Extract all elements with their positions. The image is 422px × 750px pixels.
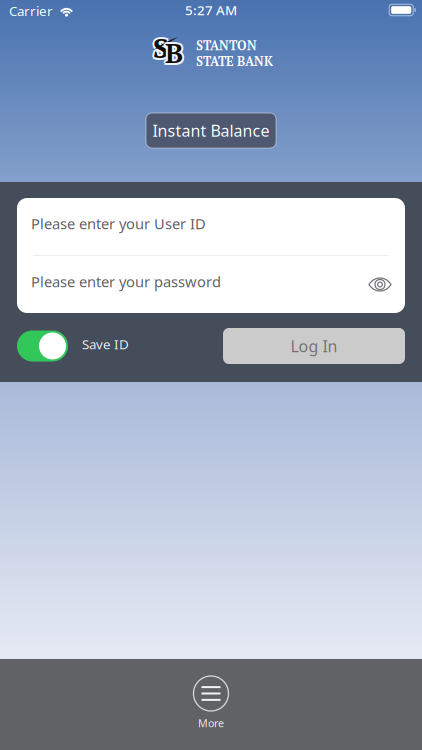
- staticText: S: [153, 31, 169, 68]
- button[interactable]: Please enter your User ID: [17, 198, 405, 255]
- staticText: Log In: [290, 335, 337, 357]
- staticText: B: [167, 34, 185, 71]
- button[interactable]: Log In: [223, 328, 405, 364]
- button[interactable]: Save ID: [17, 328, 129, 364]
- staticText: B: [163, 34, 181, 71]
- staticText: Please enter your User ID: [31, 214, 206, 233]
- staticText: B: [165, 32, 183, 69]
- staticText: STANTON: [196, 37, 257, 54]
- button[interactable]: Instant Balance: [146, 113, 276, 148]
- button[interactable]: Please enter your password: [17, 256, 405, 313]
- staticText: B: [165, 36, 183, 73]
- staticText: 5:27 AM: [185, 1, 237, 19]
- staticText: S: [153, 29, 169, 66]
- staticText: S: [155, 29, 171, 66]
- staticText: B: [167, 32, 185, 69]
- staticText: Carrier: [9, 2, 53, 20]
- staticText: Instant Balance: [152, 120, 269, 141]
- staticText: S: [155, 27, 171, 64]
- staticText: Please enter your password: [31, 272, 221, 291]
- staticText: B: [163, 32, 181, 69]
- staticText: S: [151, 29, 167, 66]
- staticText: B: [167, 36, 185, 73]
- staticText: S: [153, 27, 169, 64]
- staticText: S: [155, 31, 171, 68]
- staticText: Save ID: [82, 335, 129, 353]
- staticText: S: [151, 31, 167, 68]
- button[interactable]: More: [163, 659, 259, 729]
- staticText: STATE BANK: [196, 53, 273, 70]
- staticText: More: [198, 716, 224, 730]
- staticText: B: [163, 36, 181, 73]
- staticText: B: [165, 34, 183, 71]
- staticText: S: [151, 27, 167, 64]
